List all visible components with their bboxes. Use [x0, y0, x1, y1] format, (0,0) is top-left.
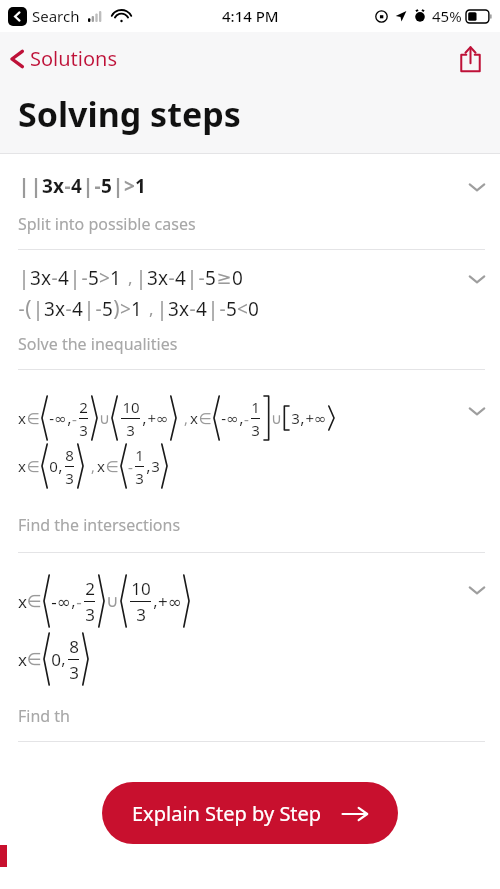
staticText: 3x: [44, 296, 65, 322]
staticText: 3: [135, 468, 144, 488]
staticText: |: [18, 264, 30, 291]
staticText: 4: [196, 296, 207, 322]
staticText: 3: [291, 408, 300, 428]
staticText: 0: [51, 648, 61, 671]
staticText: ,: [58, 455, 63, 477]
staticText: ): [113, 294, 120, 323]
staticText: |: [207, 295, 219, 322]
staticText: Solve the inequalities: [18, 333, 178, 355]
staticText: 5: [101, 173, 112, 199]
button[interactable]: Solutions: [0, 39, 128, 78]
staticText: 1: [110, 265, 121, 291]
staticText: |: [69, 264, 81, 291]
staticText: -∞: [51, 590, 71, 613]
staticText: 5: [226, 296, 237, 322]
staticText: Explain Step by Step: [132, 800, 322, 827]
staticText: ∈: [27, 649, 42, 669]
staticText: 10: [131, 577, 151, 600]
staticText: -∞: [49, 408, 67, 428]
staticText: 3x: [30, 265, 51, 291]
staticText: |: [156, 295, 168, 322]
staticText: >: [124, 173, 135, 199]
staticText: 10: [122, 397, 140, 417]
staticText: x: [18, 590, 27, 613]
staticText: x: [190, 408, 198, 428]
staticText: ,: [121, 266, 135, 289]
staticText: ≥: [216, 267, 232, 288]
staticText: 0: [232, 265, 243, 291]
staticText: 3: [42, 173, 53, 199]
staticText: 1: [135, 173, 146, 199]
staticText: 3x: [168, 296, 189, 322]
staticText: +∞: [158, 590, 182, 613]
staticText: 4: [58, 265, 69, 291]
staticText: >: [120, 296, 131, 322]
staticText: Find the intersections: [18, 514, 181, 536]
button[interactable]: |: [0, 154, 500, 249]
staticText: 3: [136, 603, 146, 626]
button[interactable]: |: [0, 250, 500, 369]
staticText: Split into possible cases: [18, 213, 196, 235]
staticText: ,: [61, 648, 66, 670]
staticText: -: [18, 296, 25, 322]
staticText: x: [18, 408, 26, 428]
staticText: 45%: [432, 6, 462, 26]
staticText: |: [82, 172, 94, 199]
staticText: -: [51, 265, 58, 291]
staticText: ∈: [27, 591, 42, 611]
staticText: |: [135, 264, 147, 291]
staticText: ∈: [26, 458, 40, 475]
staticText: x: [97, 456, 105, 476]
staticText: ∪: [99, 410, 110, 427]
staticText: -: [72, 409, 77, 429]
staticText: ,: [178, 409, 190, 428]
button[interactable]: Explain Step by Step: [102, 782, 398, 844]
staticText: 3: [251, 420, 260, 440]
staticText: 8: [69, 635, 79, 658]
staticText: |: [18, 172, 30, 199]
staticText: ,: [71, 590, 76, 612]
staticText: 4:14 PM: [222, 6, 279, 26]
staticText: -: [65, 296, 72, 322]
staticText: |: [186, 264, 198, 291]
staticText: ∪: [106, 591, 119, 611]
staticText: x: [18, 648, 27, 671]
staticText: |: [32, 295, 44, 322]
staticText: ∈: [26, 410, 40, 427]
staticText: -: [81, 265, 88, 291]
staticText: 4: [72, 296, 83, 322]
staticText: -: [168, 265, 175, 291]
staticText: ,: [142, 297, 156, 320]
staticText: -∞: [221, 408, 239, 428]
staticText: 3: [151, 456, 160, 476]
staticText: 3: [126, 420, 135, 440]
staticText: Search: [32, 6, 80, 26]
button[interactable]: x: [0, 370, 500, 552]
staticText: x: [53, 173, 64, 199]
staticText: 3: [69, 661, 79, 684]
staticText: 5: [205, 265, 216, 291]
staticText: ,: [142, 407, 147, 429]
staticText: ∪: [271, 410, 282, 427]
staticText: +∞: [305, 408, 327, 428]
staticText: <: [237, 296, 248, 322]
button[interactable]: x: [0, 553, 500, 741]
staticText: ,: [67, 407, 72, 429]
staticText: +∞: [147, 408, 169, 428]
button[interactable]: Share: [450, 39, 490, 79]
staticText: 2: [85, 577, 95, 600]
staticText: -: [198, 265, 205, 291]
staticText: 1: [131, 296, 142, 322]
staticText: 5: [88, 265, 99, 291]
staticText: 3x: [147, 265, 168, 291]
staticText: -: [244, 409, 249, 429]
staticText: 3: [65, 468, 74, 488]
staticText: 2: [79, 397, 88, 417]
staticText: ,: [153, 590, 158, 612]
staticText: Solutions: [30, 45, 118, 72]
staticText: 4: [175, 265, 186, 291]
staticText: -: [128, 457, 133, 477]
staticText: Find th: [18, 705, 70, 727]
staticText: ∈: [105, 458, 119, 475]
staticText: |: [30, 172, 42, 199]
